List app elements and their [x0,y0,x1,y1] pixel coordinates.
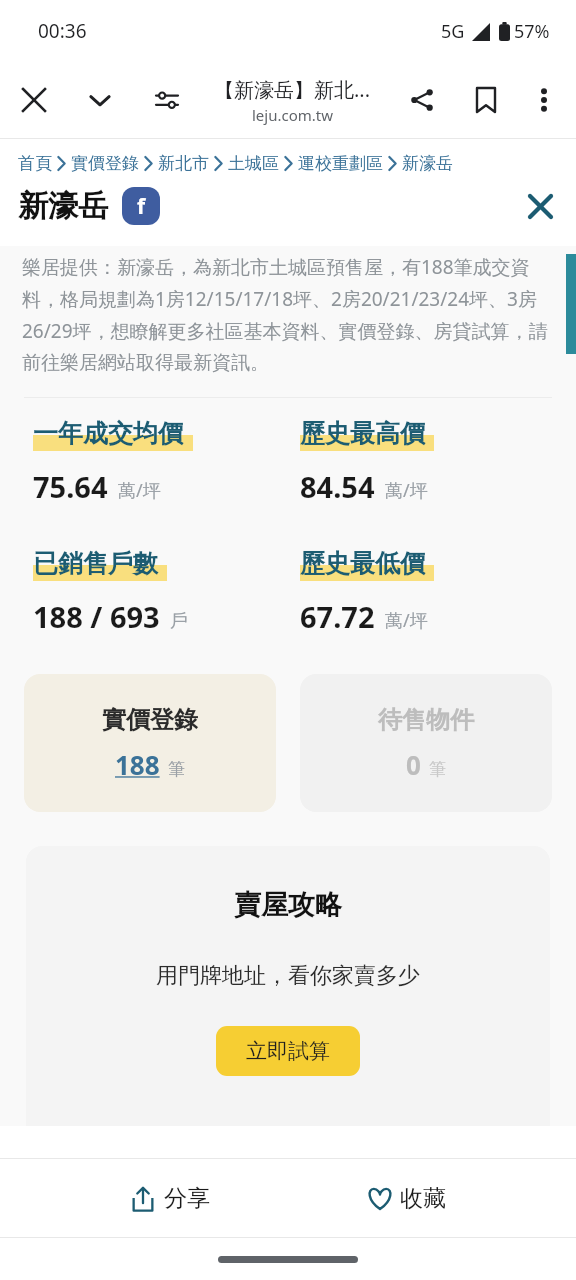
staticText: 一年成交均價 [33,418,183,449]
button[interactable]: Page info [143,76,191,124]
button[interactable]: More options [520,76,568,124]
button[interactable]: 實價登錄 [24,674,276,812]
staticText: 收藏 [400,1184,446,1213]
button[interactable]: Share on Facebook [122,187,160,225]
staticText: 樂居提供：新濠岳，為新北市土城區預售屋，有188筆成交資料，格局規劃為1房12/… [22,254,554,375]
staticText: 5G [441,19,465,44]
button[interactable]: 收藏 [340,1172,472,1225]
staticText: f [137,192,146,221]
staticText: 賣屋攻略 [234,888,342,922]
button[interactable]: 實價登錄 [71,153,139,174]
staticText: 84.54 [300,467,375,506]
button[interactable]: Close [10,76,58,124]
staticText: 75.64 [33,467,108,506]
staticText: 歷史最高價 [300,418,425,449]
button[interactable]: 運校重劃區 [298,153,383,174]
button[interactable]: Share [398,76,446,124]
staticText: 萬/坪 [385,478,428,503]
button[interactable]: Collapse [76,76,124,124]
staticText: 用門牌地址，看你家賣多少 [156,962,420,990]
staticText: 實價登錄 [102,705,198,735]
button[interactable]: 立即試算 [216,1026,360,1076]
staticText: 萬/坪 [385,608,428,633]
staticText: 67.72 [300,597,375,636]
staticText: 【新濠岳】新北... [214,76,371,103]
staticText: 實價登錄 [71,153,139,174]
button[interactable]: 待售物件 [300,674,552,812]
button[interactable]: Bookmark [462,76,510,124]
staticText: 分享 [164,1184,210,1213]
staticText: 待售物件 [378,705,474,735]
staticText: 00:36 [38,18,87,44]
staticText: 筆 [168,759,185,780]
staticText: 立即試算 [246,1038,330,1064]
button[interactable]: 分享 [104,1172,236,1225]
button[interactable]: 新濠岳 [402,153,453,174]
staticText: 筆 [429,759,446,780]
staticText: 188 [115,747,160,782]
staticText: leju.com.tw [252,105,334,125]
staticText: 運校重劃區 [298,153,383,174]
staticText: 新濠岳 [18,187,108,225]
staticText: 萬/坪 [118,478,161,503]
button[interactable]: 土城區 [228,153,279,174]
button[interactable]: Close banner [518,184,562,228]
staticText: 歷史最低價 [300,548,425,579]
staticText: 戶 [170,610,188,633]
staticText: 57% [514,19,550,44]
button[interactable]: 新北市 [158,153,209,174]
staticText: 已銷售戶數 [33,548,158,579]
button[interactable]: 首頁 [18,153,52,174]
staticText: 新濠岳 [402,153,453,174]
staticText: 首頁 [18,153,52,174]
staticText: 0 [406,747,421,782]
staticText: 188 / 693 [33,597,160,636]
staticText: 新北市 [158,153,209,174]
staticText: 土城區 [228,153,279,174]
